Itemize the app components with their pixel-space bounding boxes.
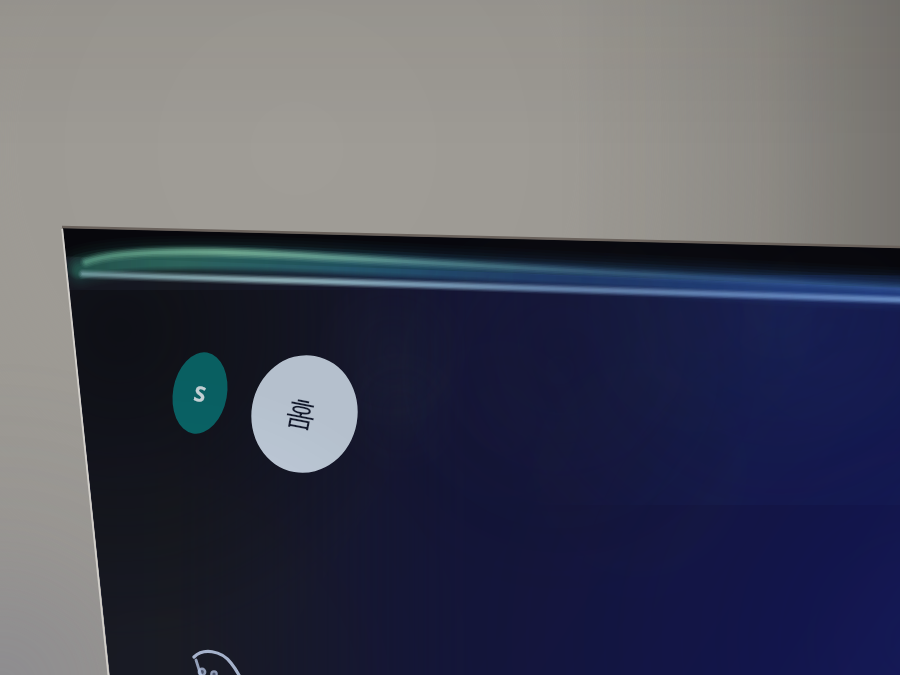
button[interactable]: Smart TV home screen [0,0,900,675]
